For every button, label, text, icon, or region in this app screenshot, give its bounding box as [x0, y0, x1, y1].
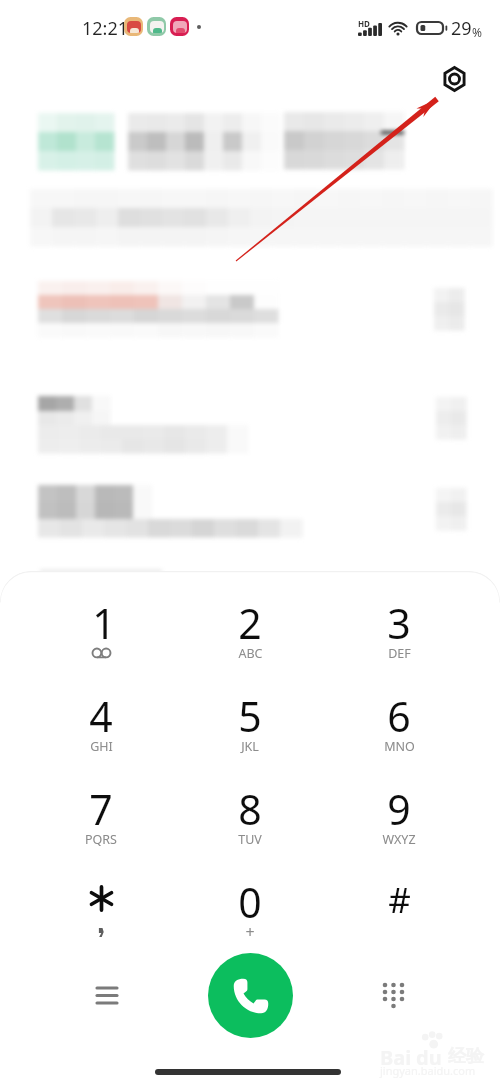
staticText: 4 [89, 688, 113, 744]
staticText: # [388, 876, 411, 924]
staticText: MNO [384, 738, 415, 755]
staticText: 0 [238, 874, 262, 930]
button[interactable]: Call [208, 953, 293, 1038]
staticText: 5 [238, 688, 262, 744]
button[interactable]: 1 [39, 586, 163, 672]
button[interactable]: 5 [188, 679, 312, 765]
staticText: JKL [241, 738, 259, 755]
button[interactable]: 9 [337, 772, 461, 858]
staticText: + [245, 921, 255, 943]
staticText: du [416, 1044, 442, 1071]
button[interactable]: 8 [188, 772, 312, 858]
staticText: DEF [388, 645, 411, 662]
staticText: jingyan.baidu.com [380, 1063, 476, 1078]
staticText: 1 [92, 595, 116, 651]
button[interactable]: 7 [39, 772, 163, 858]
button[interactable]: 3 [337, 586, 461, 672]
staticText: 12:21 [82, 16, 129, 41]
staticText: 2 [238, 595, 262, 651]
button[interactable]: 2 [188, 586, 312, 672]
staticText: WXYZ [382, 831, 416, 848]
staticText: TUV [238, 831, 262, 848]
staticText: Bai [380, 1044, 412, 1071]
staticText: 8 [238, 781, 262, 837]
staticText: 7 [89, 781, 113, 837]
button[interactable]: Dialpad [365, 967, 421, 1023]
button[interactable] [39, 865, 163, 951]
button[interactable]: # [337, 865, 461, 951]
button[interactable]: 4 [39, 679, 163, 765]
staticText: 9 [387, 781, 411, 837]
staticText: 3 [387, 595, 411, 651]
button[interactable]: Settings [432, 56, 477, 101]
button[interactable]: 0 [188, 865, 312, 951]
staticText: GHI [90, 738, 113, 755]
staticText: 经验 [448, 1045, 484, 1068]
button[interactable]: 6 [337, 679, 461, 765]
staticText: 29 [451, 16, 472, 41]
staticText: ABC [238, 645, 263, 662]
staticText: PQRS [85, 831, 117, 848]
staticText: % [472, 24, 482, 40]
staticText: 6 [387, 688, 411, 744]
staticText: HD [358, 18, 370, 29]
button[interactable]: Call log [79, 967, 135, 1023]
